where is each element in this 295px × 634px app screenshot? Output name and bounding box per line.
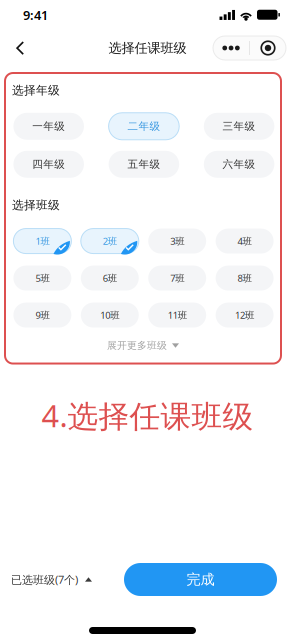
- button[interactable]: 二年级: [109, 113, 179, 140]
- button[interactable]: 四年级: [13, 151, 84, 178]
- staticText: 8班: [238, 272, 252, 284]
- staticText: 选择班级: [12, 198, 60, 213]
- button[interactable]: 一年级: [13, 113, 84, 140]
- staticText: 5班: [35, 272, 49, 284]
- staticText: 二年级: [127, 120, 160, 133]
- button[interactable]: 2班: [81, 229, 139, 254]
- button[interactable]: 10班: [81, 303, 139, 328]
- staticText: 9班: [35, 309, 49, 321]
- staticText: 已选班级(7个): [11, 572, 78, 587]
- button[interactable]: 4班: [216, 229, 274, 254]
- staticText: 选择年级: [12, 83, 60, 98]
- staticText: 五年级: [127, 158, 160, 171]
- button[interactable]: 7班: [148, 266, 206, 291]
- staticText: 选择任课班级: [108, 40, 186, 56]
- staticText: 12班: [235, 309, 254, 321]
- button[interactable]: 5班: [13, 266, 71, 291]
- staticText: 4.选择任课班级: [41, 395, 253, 436]
- staticText: 10班: [100, 309, 119, 321]
- staticText: 9:41: [23, 6, 48, 24]
- staticText: 展开更多班级: [107, 339, 167, 352]
- staticText: 2班: [103, 235, 117, 247]
- button[interactable]: 12班: [216, 303, 274, 328]
- button[interactable]: 6班: [81, 266, 139, 291]
- staticText: 一年级: [32, 120, 65, 133]
- staticText: 1班: [35, 235, 49, 247]
- staticText: 完成: [186, 571, 214, 588]
- staticText: 11班: [168, 309, 187, 321]
- button[interactable]: 1班: [13, 229, 71, 254]
- button[interactable]: 五年级: [109, 151, 179, 178]
- button[interactable]: 3班: [148, 229, 206, 254]
- staticText: 三年级: [223, 120, 256, 133]
- button[interactable]: 更多: [213, 36, 286, 60]
- button[interactable]: 已选班级(7个): [11, 563, 92, 596]
- button[interactable]: 9班: [13, 303, 71, 328]
- button[interactable]: 完成: [124, 563, 277, 596]
- button[interactable]: 返回: [3, 31, 37, 65]
- staticText: 4班: [238, 235, 252, 247]
- button[interactable]: 展开更多班级: [5, 328, 281, 364]
- button[interactable]: 三年级: [204, 113, 274, 140]
- button[interactable]: 8班: [216, 266, 274, 291]
- staticText: 3班: [170, 235, 184, 247]
- staticText: 7班: [170, 272, 184, 284]
- button[interactable]: 11班: [148, 303, 206, 328]
- staticText: 6班: [103, 272, 117, 284]
- staticText: 六年级: [223, 158, 256, 171]
- staticText: 四年级: [32, 158, 65, 171]
- button[interactable]: 六年级: [204, 151, 274, 178]
